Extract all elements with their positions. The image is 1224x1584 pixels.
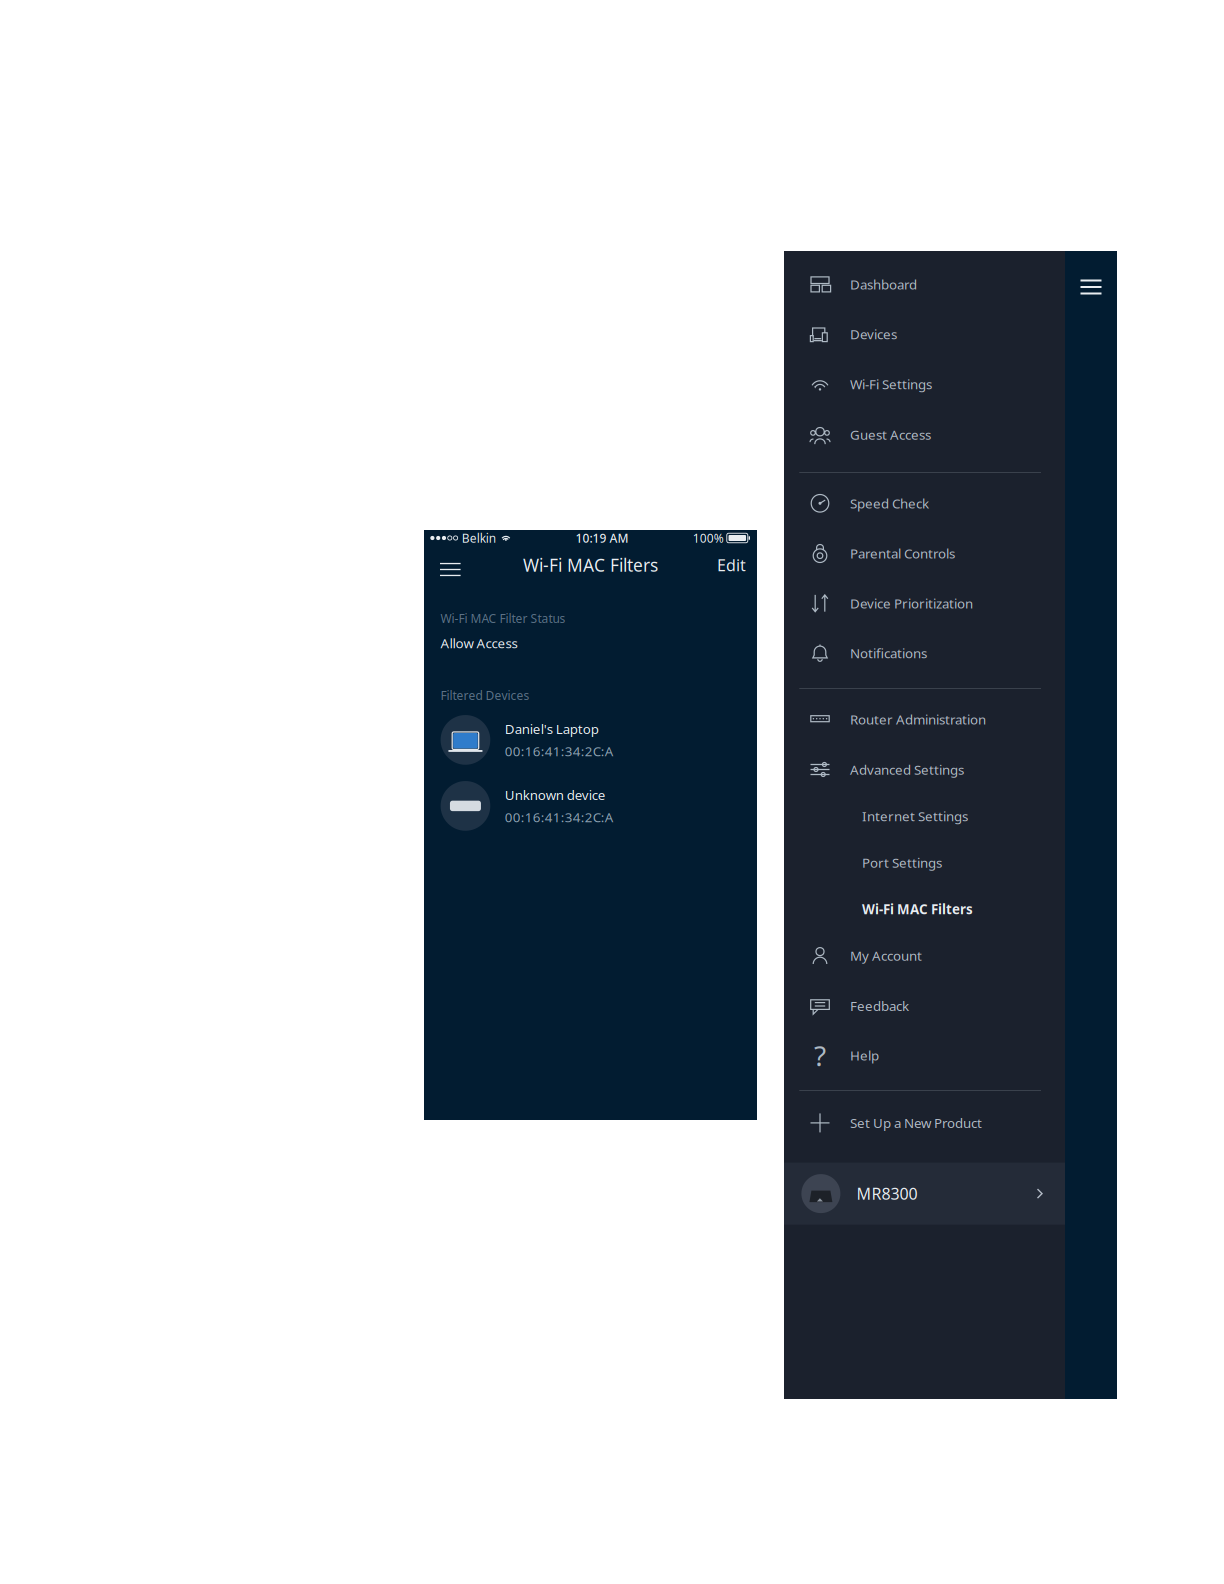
button[interactable]: Set Up a New Product: [784, 1098, 1065, 1148]
staticText: Wi-Fi MAC Filters: [862, 900, 973, 918]
staticText: 100%: [693, 530, 724, 546]
staticText: Edit: [717, 554, 746, 576]
staticText: Router Administration: [850, 710, 986, 728]
staticText: My Account: [850, 947, 922, 964]
button[interactable]: Allow Access: [424, 628, 757, 658]
staticText: Daniel's Laptop: [505, 720, 599, 738]
staticText: Belkin: [462, 530, 496, 546]
button[interactable]: Unknown device: [424, 773, 757, 839]
button[interactable]: Devices: [784, 309, 1065, 359]
staticText: Devices: [850, 325, 897, 343]
staticText: Advanced Settings: [850, 761, 964, 778]
button[interactable]: Edit: [709, 544, 754, 586]
button[interactable]: Feedback: [784, 981, 1065, 1031]
staticText: Notifications: [850, 644, 927, 662]
button[interactable]: Advanced Settings: [784, 744, 1065, 794]
staticText: Filtered Devices: [440, 687, 529, 703]
staticText: ?: [814, 1037, 826, 1074]
staticText: Set Up a New Product: [850, 1114, 982, 1132]
staticText: MR8300: [856, 1183, 917, 1204]
button[interactable]: Dashboard: [784, 259, 1065, 309]
button[interactable]: Internet Settings: [784, 793, 1065, 839]
staticText: Dashboard: [850, 275, 917, 293]
staticText: Feedback: [850, 997, 909, 1015]
button[interactable]: Wi-Fi MAC Filters: [784, 886, 1065, 932]
button[interactable]: Wi-Fi Settings: [784, 359, 1065, 409]
staticText: Internet Settings: [862, 807, 968, 825]
staticText: Help: [850, 1046, 879, 1064]
staticText: Parental Controls: [850, 544, 955, 562]
staticText: Guest Access: [850, 426, 931, 443]
button[interactable]: Close menu: [1069, 267, 1113, 307]
button[interactable]: Port Settings: [784, 839, 1065, 886]
button[interactable]: Router Administration: [784, 694, 1065, 744]
button[interactable]: Guest Access: [784, 409, 1065, 459]
staticText: 00:16:41:34:2C:A: [505, 808, 614, 826]
button[interactable]: Speed Check: [784, 478, 1065, 528]
staticText: Speed Check: [850, 494, 929, 512]
button[interactable]: Menu: [428, 544, 472, 586]
button[interactable]: Notifications: [784, 628, 1065, 678]
staticText: Port Settings: [862, 854, 942, 871]
staticText: 00:16:41:34:2C:A: [505, 742, 614, 760]
staticText: Device Prioritization: [850, 594, 973, 612]
staticText: 10:19 AM: [576, 530, 629, 546]
button[interactable]: Parental Controls: [784, 528, 1065, 578]
staticText: Wi-Fi Settings: [850, 375, 932, 393]
button[interactable]: ?: [784, 1030, 1065, 1080]
staticText: Wi-Fi MAC Filter Status: [440, 610, 565, 626]
button[interactable]: MR8300: [784, 1163, 1065, 1225]
button[interactable]: My Account: [784, 931, 1065, 981]
staticText: Wi-Fi MAC Filters: [523, 553, 658, 576]
button[interactable]: Device Prioritization: [784, 578, 1065, 628]
button[interactable]: Daniel's Laptop: [424, 707, 757, 773]
staticText: Unknown device: [505, 786, 606, 804]
staticText: Allow Access: [440, 634, 517, 652]
